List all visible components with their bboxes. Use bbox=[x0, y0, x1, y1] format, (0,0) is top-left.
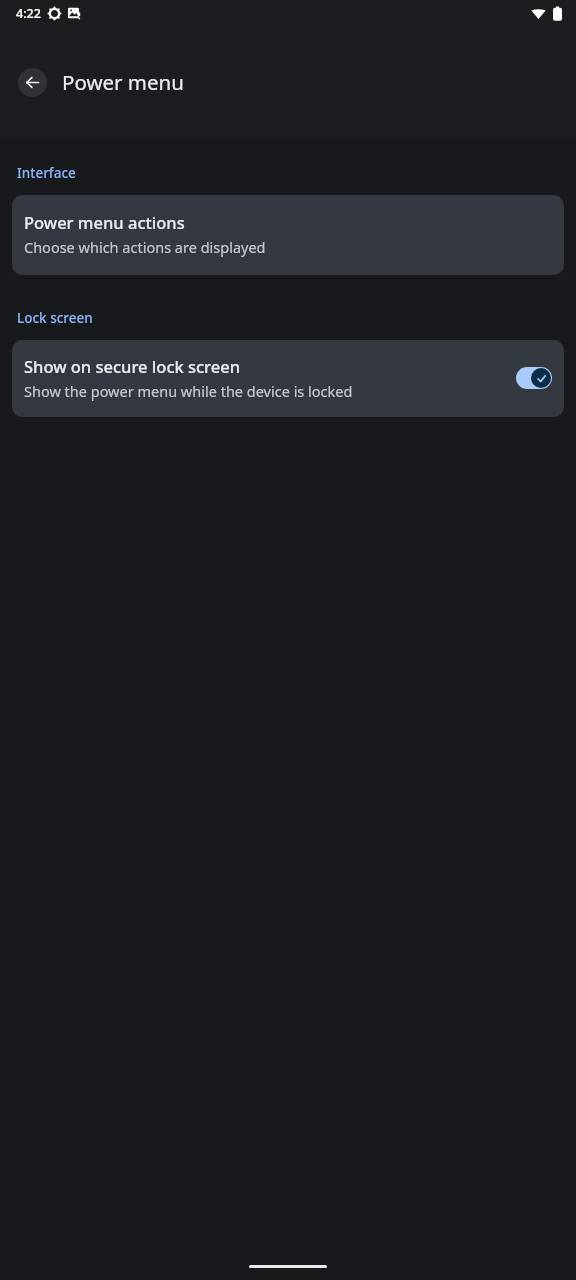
staticText: Lock screen bbox=[17, 309, 93, 327]
button[interactable]: Show on secure lock screen toggle bbox=[516, 367, 552, 389]
staticText: Power menu actions bbox=[24, 211, 185, 233]
staticText: Power menu bbox=[62, 68, 184, 96]
staticText: 4:22 bbox=[16, 5, 41, 22]
staticText: Show on secure lock screen bbox=[24, 355, 241, 377]
button[interactable]: Power menu actions bbox=[12, 195, 564, 275]
button[interactable]: Back bbox=[18, 68, 47, 97]
staticText: Choose which actions are displayed bbox=[24, 237, 266, 257]
staticText: Show the power menu while the device is … bbox=[24, 381, 353, 401]
staticText: Interface bbox=[17, 164, 76, 182]
button[interactable]: Show on secure lock screen bbox=[12, 340, 564, 417]
